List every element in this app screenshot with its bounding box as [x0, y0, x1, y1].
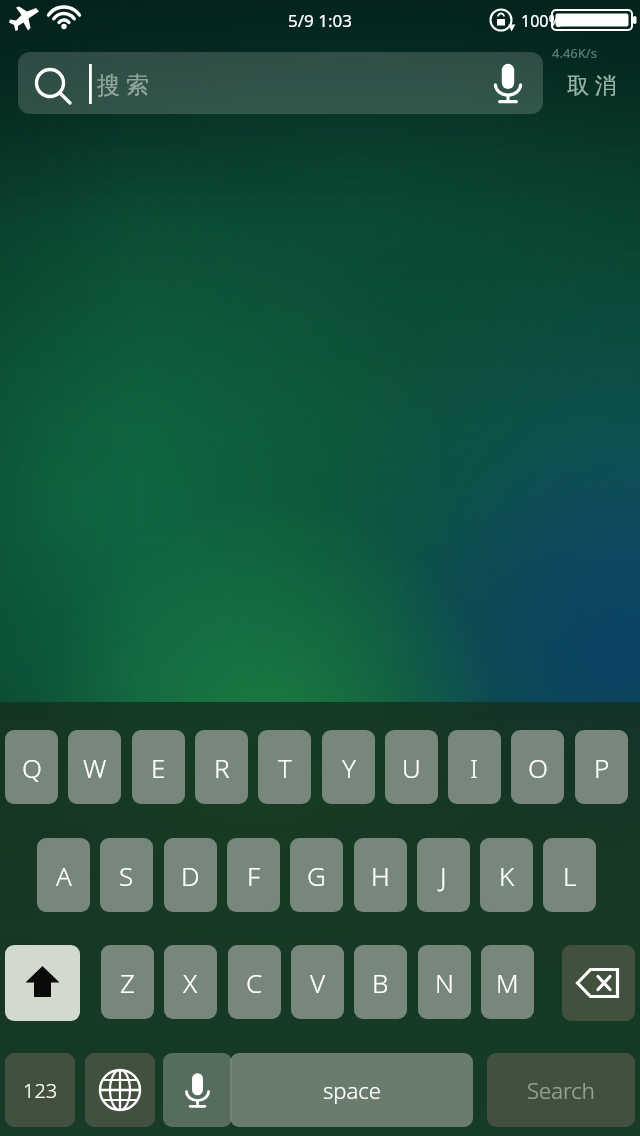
staticText: A — [56, 858, 72, 893]
button[interactable]: F — [227, 838, 280, 912]
button[interactable]: Q — [5, 730, 58, 804]
staticText: 100% — [521, 10, 562, 32]
staticText: I — [470, 750, 479, 785]
button[interactable]: V — [291, 945, 344, 1019]
staticText: E — [151, 750, 166, 785]
button[interactable]: U — [385, 730, 438, 804]
button[interactable]: Y — [322, 730, 375, 804]
staticText: X — [183, 965, 198, 1000]
staticText: N — [435, 965, 454, 1000]
staticText: J — [440, 858, 447, 893]
button[interactable]: X — [164, 945, 217, 1019]
button[interactable]: P — [575, 730, 628, 804]
staticText: Q — [22, 750, 42, 785]
staticText: T — [278, 750, 292, 785]
staticText: 5/9 1:03 — [288, 9, 352, 32]
button[interactable]: Dictation — [163, 1053, 232, 1127]
button[interactable]: space — [230, 1053, 473, 1127]
staticText: O — [528, 750, 548, 785]
button[interactable]: L — [543, 838, 596, 912]
button[interactable]: J — [417, 838, 470, 912]
staticText: 4.46K/s — [552, 44, 597, 62]
button[interactable]: A — [37, 838, 90, 912]
staticText: F — [247, 858, 261, 893]
button[interactable]: K — [480, 838, 533, 912]
button[interactable]: 取 消 — [550, 63, 634, 105]
staticText: H — [371, 858, 390, 893]
staticText: R — [214, 750, 230, 785]
staticText: B — [372, 965, 389, 1000]
staticText: L — [563, 858, 577, 893]
staticText: M — [496, 965, 519, 1000]
button[interactable]: Next keyboard — [85, 1053, 155, 1127]
staticText: 搜 索 — [97, 68, 149, 99]
button[interactable]: R — [195, 730, 248, 804]
button[interactable]: M — [481, 945, 534, 1019]
button[interactable]: Shift — [5, 945, 80, 1021]
button[interactable]: S — [100, 838, 153, 912]
button[interactable]: O — [511, 730, 564, 804]
button[interactable]: W — [68, 730, 121, 804]
button[interactable]: G — [290, 838, 343, 912]
button[interactable]: B — [354, 945, 407, 1019]
button[interactable]: Search — [487, 1053, 635, 1127]
button[interactable]: Z — [101, 945, 154, 1019]
button[interactable]: T — [258, 730, 311, 804]
button[interactable]: C — [228, 945, 281, 1019]
staticText: Y — [342, 750, 356, 785]
staticText: 123 — [23, 1077, 58, 1104]
staticText: W — [83, 750, 107, 785]
button[interactable]: N — [418, 945, 471, 1019]
staticText: U — [402, 750, 421, 785]
staticText: D — [181, 858, 200, 893]
staticText: space — [323, 1075, 381, 1105]
button[interactable]: 搜 索 — [18, 52, 543, 114]
button[interactable]: Backspace — [562, 945, 635, 1021]
button[interactable]: Voice search — [485, 60, 531, 106]
staticText: P — [594, 750, 610, 785]
button[interactable]: D — [164, 838, 217, 912]
button[interactable]: H — [354, 838, 407, 912]
staticText: G — [307, 858, 326, 893]
button[interactable]: E — [132, 730, 185, 804]
staticText: 取 消 — [567, 69, 617, 99]
staticText: C — [246, 965, 263, 1000]
staticText: Z — [120, 965, 135, 1000]
staticText: V — [310, 965, 326, 1000]
button[interactable]: I — [448, 730, 501, 804]
staticText: Search — [527, 1075, 595, 1105]
staticText: S — [119, 858, 134, 893]
button[interactable]: 123 — [5, 1053, 75, 1127]
staticText: K — [499, 858, 515, 893]
